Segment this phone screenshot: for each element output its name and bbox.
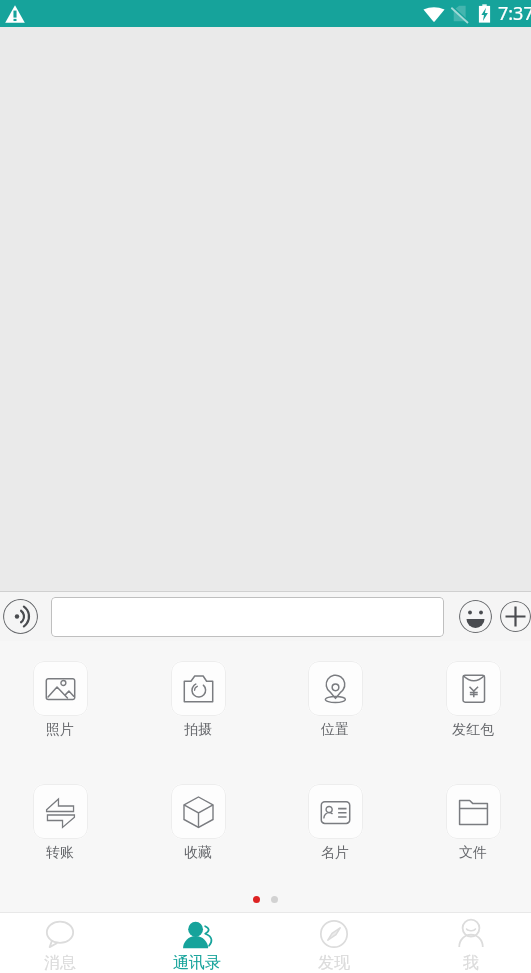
button[interactable]: 发红包 [432,661,514,739]
button[interactable]: 照片 [19,661,101,739]
button[interactable]: 文件 [432,784,514,862]
staticText: 我 [463,953,479,973]
staticText: 发红包 [452,721,494,739]
button[interactable]: 发现 [293,912,375,973]
staticText: 收藏 [184,844,212,862]
button[interactable]: 我 [430,912,512,973]
button[interactable]: 通讯录 [156,912,238,973]
staticText: 通讯录 [173,953,221,973]
button[interactable]: 名片 [294,784,376,862]
button[interactable] [51,597,444,637]
staticText: 转账 [46,844,74,862]
button[interactable]: 位置 [294,661,376,739]
button[interactable]: Voice input [3,599,38,634]
staticText: 名片 [321,844,349,862]
staticText: 发现 [318,953,350,973]
staticText: 消息 [44,953,76,973]
button[interactable]: 收藏 [157,784,239,862]
staticText: 7:37 [498,1,531,26]
staticText: 位置 [321,721,349,739]
button[interactable]: More [500,601,531,632]
staticText: 文件 [459,844,487,862]
staticText: 照片 [46,721,74,739]
button[interactable]: 转账 [19,784,101,862]
button[interactable]: Emoji [459,600,492,633]
button[interactable]: 消息 [19,912,101,973]
staticText: 拍摄 [184,721,212,739]
button[interactable]: 拍摄 [157,661,239,739]
